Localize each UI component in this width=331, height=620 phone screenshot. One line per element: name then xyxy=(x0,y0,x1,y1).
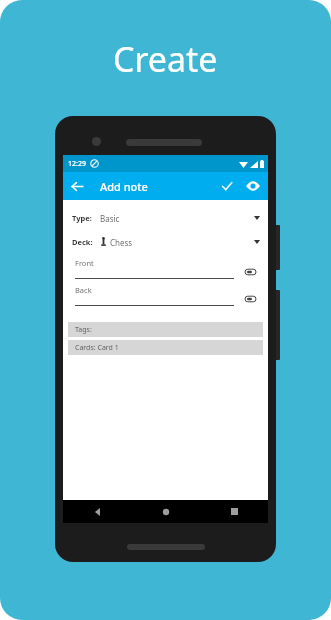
staticText: Basic xyxy=(100,213,120,224)
button[interactable]: Back xyxy=(63,285,268,312)
button[interactable]: Cards: Card 1 xyxy=(68,340,263,355)
button[interactable]: Type: xyxy=(63,206,268,230)
button[interactable]: Attach media xyxy=(245,268,256,276)
staticText: Tags: xyxy=(75,325,92,335)
button[interactable]: Deck: xyxy=(63,230,268,254)
button[interactable]: Preview xyxy=(240,173,266,199)
button[interactable]: Back xyxy=(63,172,91,200)
staticText: Deck: xyxy=(72,237,93,247)
staticText: Front xyxy=(75,258,94,268)
staticText: Type: xyxy=(72,213,92,223)
staticText: Add note xyxy=(100,179,148,194)
staticText: Back xyxy=(75,285,92,295)
staticText: Chess xyxy=(110,237,133,248)
staticText: Cards: Card 1 xyxy=(75,343,119,353)
staticText: 12:29 xyxy=(68,159,86,169)
button[interactable]: Home xyxy=(132,500,200,523)
button[interactable]: Tags: xyxy=(68,322,263,337)
staticText: Create xyxy=(113,36,218,82)
button[interactable]: Attach media xyxy=(245,295,256,303)
button[interactable]: Front xyxy=(63,258,268,285)
button[interactable]: Back xyxy=(63,500,132,523)
button[interactable]: Recents xyxy=(200,500,268,523)
button[interactable]: Save xyxy=(214,173,240,199)
